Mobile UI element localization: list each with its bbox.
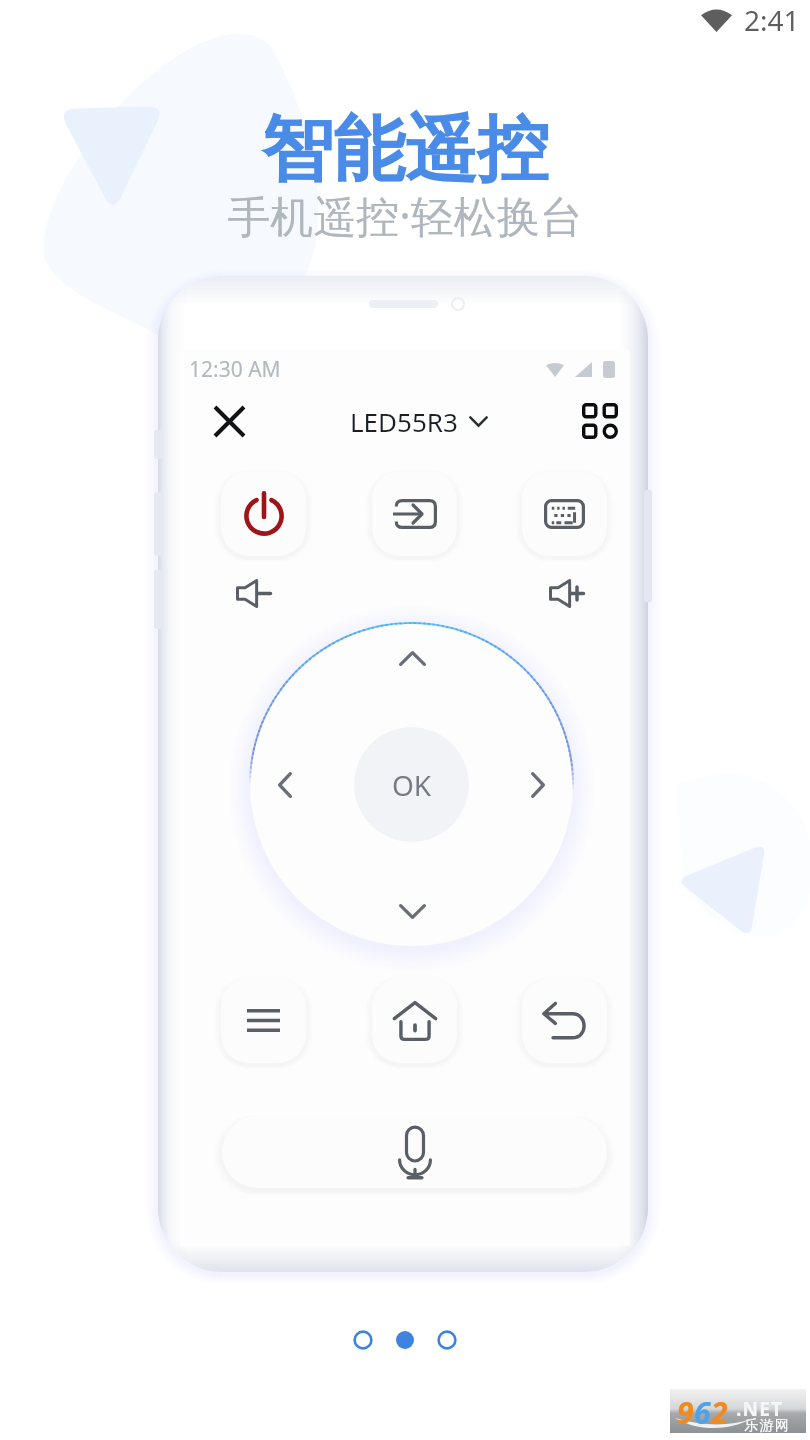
staticText: LED55R3 — [350, 404, 458, 439]
button[interactable]: Keyboard — [522, 471, 607, 556]
button[interactable]: Back — [522, 978, 607, 1063]
button[interactable]: LED55R3 — [350, 404, 488, 439]
button[interactable]: Left — [254, 754, 316, 816]
button[interactable]: Down — [381, 880, 443, 942]
staticText: 12:30 AM — [189, 355, 281, 384]
staticText: 2 — [711, 1392, 728, 1433]
button[interactable]: Voice search — [222, 1116, 607, 1188]
staticText: 6 — [694, 1392, 711, 1433]
button[interactable]: Close — [203, 395, 255, 447]
button[interactable]: Up — [381, 627, 443, 689]
staticText: 9 — [677, 1392, 694, 1433]
button[interactable]: Source — [372, 471, 457, 556]
button[interactable]: Apps — [574, 395, 626, 447]
button[interactable]: Volume down — [221, 568, 285, 618]
button[interactable]: Volume up — [534, 568, 598, 618]
staticText: 智能遥控 — [261, 105, 549, 196]
staticText: 乐游网 — [744, 1417, 791, 1435]
staticText: 手机遥控·轻松换台 — [227, 186, 583, 245]
button[interactable]: Power — [221, 471, 306, 556]
staticText: 2:41 — [744, 1, 800, 39]
button[interactable]: Right — [507, 754, 569, 816]
staticText: .NET — [736, 1396, 784, 1422]
button[interactable]: Menu — [221, 978, 306, 1063]
button[interactable]: Home — [372, 978, 457, 1063]
button[interactable]: OK — [354, 727, 470, 843]
staticText: OK — [392, 766, 432, 804]
